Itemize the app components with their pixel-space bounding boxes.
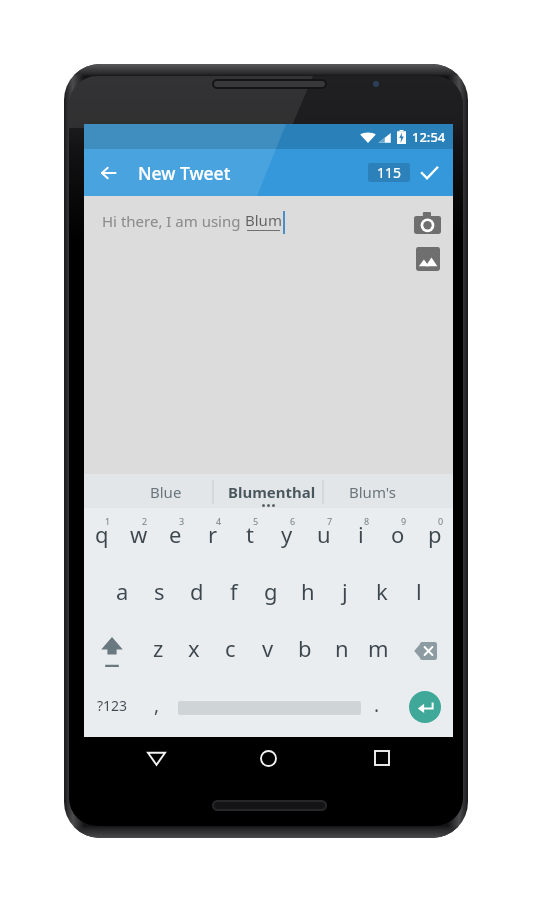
button[interactable]: Blumenthal xyxy=(213,474,323,508)
button[interactable]: Blum's xyxy=(323,474,453,508)
button[interactable]: z xyxy=(140,622,176,679)
button[interactable]: Back xyxy=(132,738,180,776)
button[interactable]: j xyxy=(326,565,363,622)
button[interactable]: h xyxy=(289,565,326,622)
button[interactable]: n xyxy=(323,622,360,679)
staticText: z xyxy=(153,633,164,663)
staticText: 5 xyxy=(253,515,259,527)
button[interactable]: Send tweet xyxy=(410,149,442,196)
button[interactable]: 6 xyxy=(268,508,305,565)
staticText: 9 xyxy=(401,515,407,527)
staticText: a xyxy=(116,576,129,606)
button[interactable]: 9 xyxy=(379,508,416,565)
button[interactable]: ?123 xyxy=(84,679,140,737)
staticText: u xyxy=(317,519,331,549)
staticText: f xyxy=(230,576,238,606)
button[interactable]: Back xyxy=(84,149,126,196)
button[interactable]: b xyxy=(286,622,323,679)
staticText: . xyxy=(374,692,380,718)
staticText: ?123 xyxy=(97,696,128,715)
button[interactable]: Space xyxy=(174,679,364,737)
staticText: w xyxy=(130,519,148,549)
staticText: 4 xyxy=(216,515,222,527)
button[interactable]: 3 xyxy=(157,508,194,565)
staticText: 8 xyxy=(364,515,370,527)
staticText: o xyxy=(391,519,405,549)
button[interactable]: 115 xyxy=(368,163,410,182)
staticText: e xyxy=(169,519,182,549)
button[interactable]: 5 xyxy=(231,508,268,565)
staticText: k xyxy=(376,576,388,606)
button[interactable]: v xyxy=(249,622,286,679)
staticText: 7 xyxy=(327,515,333,527)
button[interactable]: s xyxy=(141,565,178,622)
staticText: , xyxy=(154,692,160,718)
button[interactable]: 1 xyxy=(84,508,120,565)
staticText: q xyxy=(95,519,109,549)
staticText: c xyxy=(225,633,236,663)
button[interactable]: Blue xyxy=(84,474,213,508)
button[interactable]: Backspace xyxy=(397,622,453,679)
staticText: r xyxy=(208,519,218,549)
button[interactable]: m xyxy=(360,622,397,679)
staticText: m xyxy=(368,633,389,663)
button[interactable]: f xyxy=(215,565,252,622)
button[interactable]: k xyxy=(363,565,400,622)
staticText: l xyxy=(416,576,422,606)
button[interactable]: 7 xyxy=(305,508,342,565)
staticText: 12:54 xyxy=(412,128,446,146)
staticText: p xyxy=(428,519,442,549)
staticText: 0 xyxy=(438,515,444,527)
button[interactable]: d xyxy=(178,565,215,622)
staticText: Hi there, I am using xyxy=(102,211,245,231)
staticText: j xyxy=(342,576,348,606)
button[interactable]: 0 xyxy=(416,508,453,565)
staticText: s xyxy=(154,576,165,606)
button[interactable]: , xyxy=(140,679,174,737)
staticText: d xyxy=(190,576,204,606)
button[interactable]: Take photo xyxy=(411,206,443,238)
staticText: Blue xyxy=(150,482,182,502)
button[interactable]: 2 xyxy=(120,508,157,565)
button[interactable]: Home xyxy=(244,738,292,776)
staticText: Blum xyxy=(245,210,282,230)
staticText: h xyxy=(301,576,315,606)
staticText: g xyxy=(264,576,278,606)
button[interactable]: . xyxy=(364,679,389,737)
staticText: x xyxy=(188,633,200,663)
staticText: y xyxy=(281,519,293,549)
button[interactable]: g xyxy=(252,565,289,622)
button[interactable]: 4 xyxy=(194,508,231,565)
staticText: 115 xyxy=(377,163,402,182)
staticText: 6 xyxy=(290,515,296,527)
button[interactable]: 8 xyxy=(342,508,379,565)
button[interactable]: Recents xyxy=(358,738,406,776)
staticText: 1 xyxy=(105,515,111,527)
staticText: Blumenthal xyxy=(228,482,316,502)
button[interactable]: Shift xyxy=(84,622,140,679)
staticText: 2 xyxy=(142,515,148,527)
staticText: v xyxy=(262,633,274,663)
button[interactable]: x xyxy=(176,622,212,679)
staticText: Blum's xyxy=(349,482,396,502)
button[interactable]: Enter xyxy=(389,679,453,737)
button[interactable]: Add image xyxy=(412,243,444,275)
button[interactable]: l xyxy=(400,565,437,622)
staticText: 3 xyxy=(179,515,185,527)
staticText: n xyxy=(335,633,349,663)
button[interactable]: c xyxy=(212,622,249,679)
staticText: b xyxy=(298,633,312,663)
button[interactable]: a xyxy=(104,565,141,622)
staticText: New Tweet xyxy=(138,161,231,185)
staticText: i xyxy=(358,519,364,549)
staticText: t xyxy=(246,519,254,549)
